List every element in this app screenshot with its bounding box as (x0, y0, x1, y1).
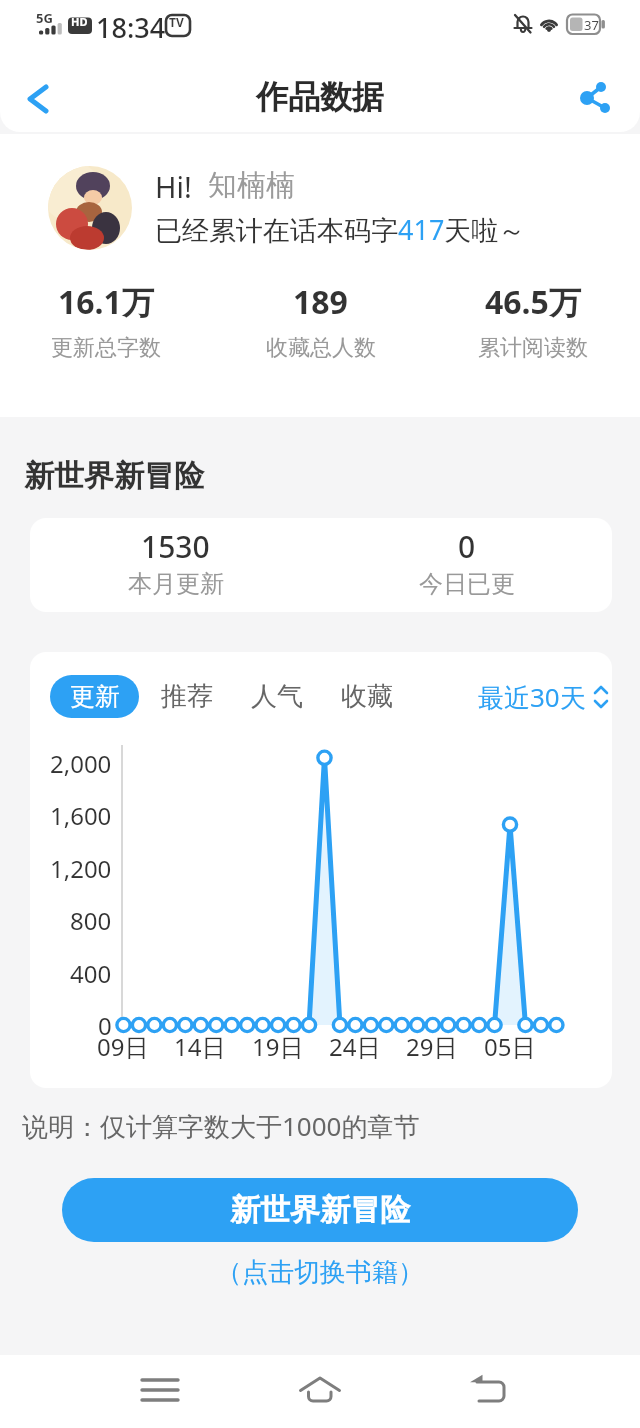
staticText: Hi! (155, 167, 192, 206)
staticText: 收藏 (341, 680, 393, 713)
staticText: 800 (70, 904, 112, 937)
button[interactable]: 收藏 (337, 675, 397, 718)
staticText: 今日已更 (419, 569, 515, 599)
button[interactable]: 推荐 (157, 675, 217, 718)
staticText: 说明：仅计算字数大于1000的章节 (22, 1108, 420, 1144)
button[interactable]: 更新 (50, 675, 139, 718)
staticText: 作品数据 (256, 77, 384, 117)
staticText: 14日 (174, 1030, 226, 1063)
staticText: HD (71, 14, 88, 29)
staticText: 400 (70, 957, 112, 990)
button[interactable]: 新世界新冒险 (62, 1178, 578, 1242)
staticText: 0 (98, 1009, 112, 1042)
staticText: 18:34 (96, 9, 166, 46)
staticText: 本月更新 (128, 569, 224, 599)
button[interactable] (48, 166, 132, 250)
staticText: 16.1万 (58, 280, 154, 324)
staticText: 1530 (141, 526, 210, 567)
staticText: 46.5万 (485, 280, 581, 324)
staticText: 5G (36, 9, 53, 27)
staticText: 189 (293, 280, 348, 324)
staticText: 0 (458, 526, 476, 567)
button[interactable]: 最近30天 (478, 675, 611, 718)
staticText: 更新总字数 (51, 334, 161, 362)
staticText: 累计阅读数 (478, 334, 588, 362)
staticText: 1,600 (50, 799, 112, 832)
staticText: 05日 (484, 1030, 536, 1063)
staticText: 19日 (252, 1030, 304, 1063)
button[interactable] (290, 1360, 350, 1420)
staticText: 29日 (406, 1030, 458, 1063)
staticText: 最近30天 (478, 679, 586, 715)
button[interactable] (12, 74, 62, 124)
staticText: 37 (584, 16, 599, 34)
button[interactable]: （点击切换书籍） (0, 1252, 640, 1292)
staticText: 1,200 (50, 852, 112, 885)
staticText: 知楠楠 (208, 167, 295, 204)
staticText: 更新 (70, 681, 120, 712)
staticText: 2,000 (50, 747, 112, 780)
staticText: 人气 (251, 680, 303, 713)
button[interactable]: 人气 (247, 675, 307, 718)
staticText: 收藏总人数 (266, 334, 376, 362)
staticText: 09日 (97, 1030, 149, 1063)
button[interactable] (130, 1360, 190, 1420)
staticText: TV (169, 14, 184, 30)
button[interactable] (460, 1360, 520, 1420)
staticText: 已经累计在话本码字417天啦～ (155, 211, 526, 248)
staticText: 推荐 (161, 680, 213, 713)
staticText: （点击切换书籍） (216, 1256, 424, 1289)
staticText: 24日 (329, 1030, 381, 1063)
staticText: 新世界新冒险 (24, 457, 204, 495)
button[interactable] (568, 68, 628, 128)
staticText: 新世界新冒险 (230, 1191, 410, 1229)
